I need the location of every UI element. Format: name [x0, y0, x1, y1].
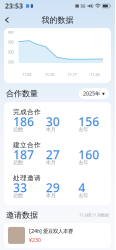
staticText: 2025年	[83, 90, 100, 97]
staticText: 总数	[13, 159, 23, 166]
staticText: 186	[13, 114, 34, 129]
staticText: 156	[78, 114, 99, 129]
staticText: 处理邀请	[13, 174, 41, 182]
button[interactable]: Back	[0, 13, 16, 27]
staticText: 11-17	[67, 72, 76, 77]
staticText: 我的数据	[41, 15, 73, 25]
staticText: 4	[78, 180, 85, 195]
staticText: 29	[46, 180, 60, 195]
staticText: 完成合作	[13, 108, 41, 116]
button[interactable]: 2025年	[79, 88, 109, 99]
staticText: 23:53	[5, 2, 23, 10]
staticText: 11-24至11-30数据	[79, 212, 109, 218]
staticText: 本月	[46, 192, 56, 199]
staticText: 30	[46, 114, 60, 129]
staticText: 400	[7, 29, 13, 35]
staticText: 5G	[80, 3, 85, 9]
staticText: 160	[78, 147, 99, 162]
staticText: 总数	[13, 192, 23, 199]
staticText: 27	[46, 147, 60, 162]
staticText: 去年	[78, 159, 88, 166]
staticText: 200	[7, 49, 13, 55]
staticText: 本月	[46, 126, 56, 133]
staticText: 100	[7, 59, 13, 65]
staticText: 去年	[78, 126, 88, 133]
staticText: 去年	[78, 192, 88, 199]
staticText: 邀请数据	[6, 210, 38, 220]
staticText: 300	[7, 39, 13, 45]
staticText: 合作数量	[6, 89, 38, 98]
staticText: ▾	[102, 90, 105, 97]
staticText: 33	[13, 180, 27, 195]
staticText: [24h] 爱豆双人本赛	[29, 227, 73, 234]
button[interactable]: [24h] 爱豆双人本赛	[4, 223, 111, 248]
staticText: 11-24	[90, 72, 99, 77]
staticText: 11-10	[45, 72, 54, 77]
staticText: 187	[13, 147, 34, 162]
staticText: 本月	[46, 159, 56, 166]
staticText: 建立合作	[13, 141, 41, 149]
staticText: 总数	[13, 126, 23, 133]
staticText: 11-03	[22, 72, 31, 77]
staticText: ¥230	[29, 236, 41, 243]
